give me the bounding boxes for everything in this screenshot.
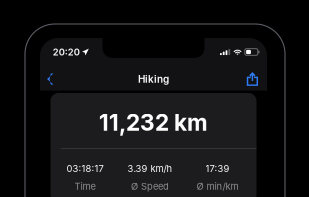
staticText: Time	[74, 181, 95, 192]
staticText: 03:18:17	[66, 163, 103, 174]
staticText: Hiking	[138, 73, 169, 85]
staticText: 17:39	[205, 163, 229, 174]
staticText: 3.39 km/h	[127, 163, 172, 174]
staticText: Ø Speed	[131, 181, 169, 192]
button[interactable]: Share	[243, 68, 262, 90]
staticText: 11,232 km	[99, 109, 208, 136]
staticText: Ø min/km	[196, 181, 238, 192]
staticText: 20:20	[53, 46, 80, 58]
button[interactable]: Back	[42, 68, 58, 89]
